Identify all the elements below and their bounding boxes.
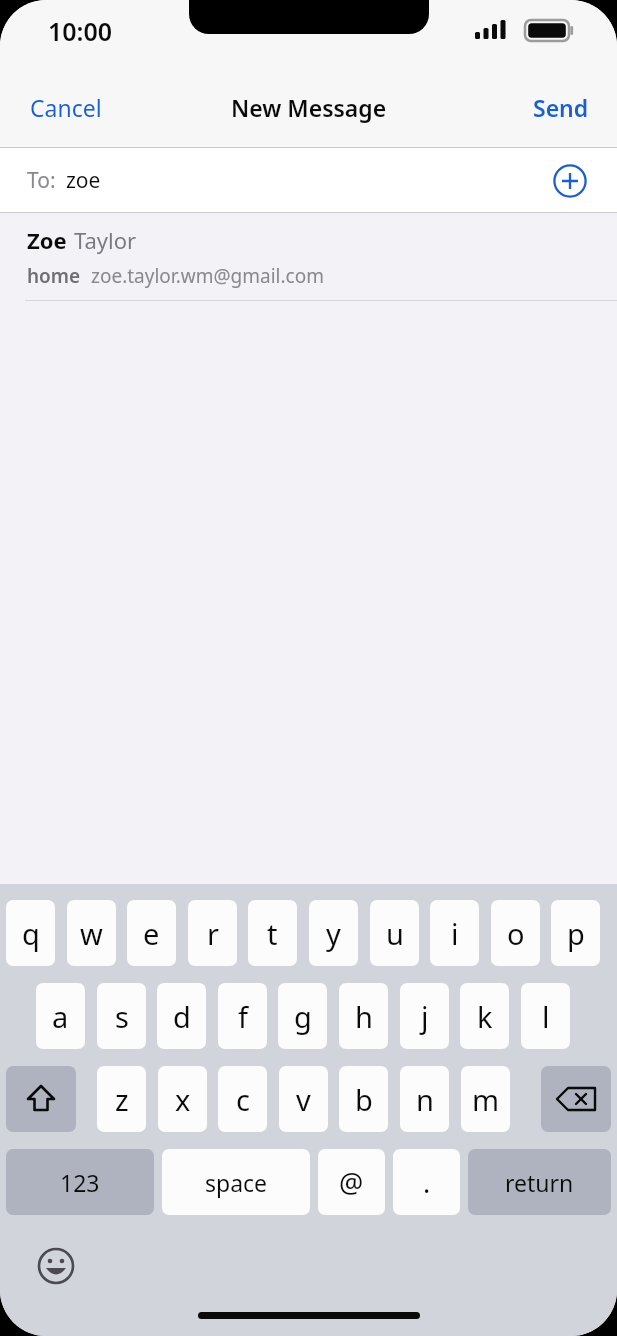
button[interactable]: 123 xyxy=(6,1149,154,1215)
staticText: New Message xyxy=(231,92,387,123)
staticText: . xyxy=(423,1164,431,1201)
staticText: q xyxy=(22,914,40,953)
button[interactable]: i xyxy=(430,900,479,966)
button[interactable]: a xyxy=(36,983,85,1049)
button[interactable]: u xyxy=(370,900,419,966)
button[interactable]: . xyxy=(393,1149,460,1215)
button[interactable]: Delete xyxy=(541,1066,611,1132)
staticText: l xyxy=(542,997,550,1036)
staticText: o xyxy=(507,914,525,953)
button[interactable]: v xyxy=(279,1066,328,1132)
button[interactable]: Shift xyxy=(6,1066,76,1132)
button[interactable]: k xyxy=(460,983,509,1049)
staticText: home xyxy=(27,263,81,289)
button[interactable]: z xyxy=(97,1066,146,1132)
staticText: c xyxy=(236,1080,250,1119)
button[interactable]: Emoji keyboard xyxy=(32,1242,80,1290)
staticText: b xyxy=(355,1080,373,1119)
button[interactable]: p xyxy=(551,900,600,966)
staticText: d xyxy=(173,997,191,1036)
button[interactable]: m xyxy=(461,1066,510,1132)
staticText: @ xyxy=(339,1164,364,1201)
button[interactable]: l xyxy=(521,983,570,1049)
staticText: e xyxy=(143,914,160,953)
staticText: x xyxy=(175,1080,191,1119)
staticText: k xyxy=(477,997,493,1036)
staticText: t xyxy=(267,914,278,953)
staticText: Send xyxy=(533,92,589,123)
staticText: y xyxy=(326,914,341,953)
staticText: j xyxy=(421,997,429,1036)
button[interactable]: w xyxy=(67,900,116,966)
staticText: g xyxy=(294,997,312,1036)
staticText: m xyxy=(472,1080,500,1119)
staticText: 10:00 xyxy=(48,14,113,48)
button[interactable]: @ xyxy=(318,1149,385,1215)
staticText: v xyxy=(296,1080,311,1119)
staticText: zoe xyxy=(66,166,101,195)
staticText: i xyxy=(451,914,459,953)
button[interactable]: h xyxy=(339,983,388,1049)
staticText: u xyxy=(386,914,404,953)
staticText: h xyxy=(355,997,373,1036)
button[interactable]: c xyxy=(218,1066,267,1132)
staticText: a xyxy=(52,997,69,1036)
button[interactable]: o xyxy=(491,900,540,966)
staticText: To: xyxy=(27,166,56,195)
button[interactable]: t xyxy=(248,900,297,966)
button[interactable]: y xyxy=(309,900,358,966)
button[interactable]: s xyxy=(97,983,146,1049)
button[interactable]: f xyxy=(218,983,267,1049)
staticText: 123 xyxy=(60,1167,100,1198)
button[interactable]: return xyxy=(468,1149,611,1215)
button[interactable]: b xyxy=(339,1066,388,1132)
button[interactable]: d xyxy=(157,983,206,1049)
button[interactable]: x xyxy=(158,1066,207,1132)
staticText: return xyxy=(505,1167,574,1198)
staticText: Taylor xyxy=(74,225,137,255)
button[interactable]: Send xyxy=(505,76,617,139)
button[interactable]: q xyxy=(6,900,55,966)
button[interactable]: Cancel xyxy=(0,76,132,139)
button[interactable]: j xyxy=(400,983,449,1049)
staticText: p xyxy=(567,914,585,953)
button[interactable]: n xyxy=(400,1066,449,1132)
button[interactable]: e xyxy=(127,900,176,966)
button[interactable]: g xyxy=(278,983,327,1049)
staticText: Zoe xyxy=(27,225,67,255)
staticText: n xyxy=(416,1080,434,1119)
button[interactable]: Add contact xyxy=(551,162,589,200)
button[interactable]: Zoe xyxy=(0,213,617,301)
staticText: z xyxy=(115,1080,129,1119)
staticText: Cancel xyxy=(30,92,102,123)
staticText: s xyxy=(115,997,129,1036)
button[interactable]: r xyxy=(188,900,237,966)
staticText: zoe.taylor.wm@gmail.com xyxy=(91,263,324,289)
button[interactable]: space xyxy=(162,1149,310,1215)
staticText: space xyxy=(205,1167,268,1198)
staticText: w xyxy=(80,914,103,953)
staticText: f xyxy=(238,997,248,1036)
staticText: r xyxy=(207,914,219,953)
